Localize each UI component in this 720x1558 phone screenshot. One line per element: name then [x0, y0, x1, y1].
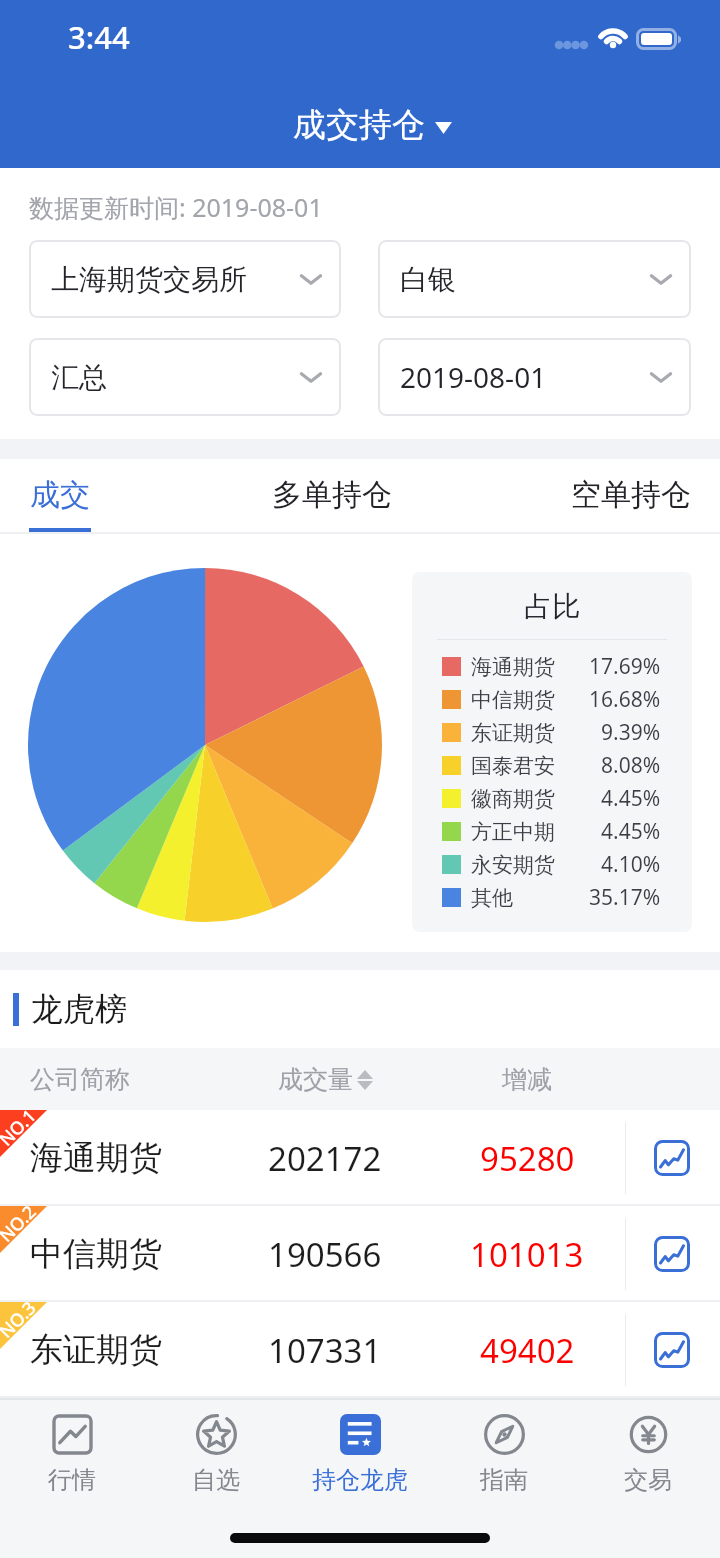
staticText: 自选 — [192, 1465, 240, 1495]
staticText: 空单持仓 — [571, 476, 691, 514]
staticText: 龙虎榜 — [31, 989, 127, 1029]
staticText: 方正中期 — [471, 819, 555, 845]
staticText: 交易 — [624, 1465, 672, 1495]
button[interactable]: 上海期货交易所 — [29, 240, 341, 318]
staticText: NO.3 — [0, 1295, 42, 1344]
staticText: 上海期货交易所 — [51, 262, 247, 297]
button[interactable]: 2019-08-01 — [378, 338, 691, 416]
staticText: 4.45% — [601, 817, 661, 846]
staticText: 其他 — [471, 885, 513, 911]
button[interactable]: 中信期货 — [0, 1206, 720, 1302]
staticText: 东证期货 — [471, 720, 555, 746]
staticText: 2019-08-01 — [400, 358, 547, 396]
staticText: 中信期货 — [471, 687, 555, 713]
button[interactable]: 海通期货 — [0, 1110, 720, 1206]
button[interactable]: 查看走势图 — [654, 1332, 690, 1368]
staticText: 101013 — [470, 1232, 584, 1277]
button[interactable]: 多单持仓 — [269, 459, 394, 534]
staticText: 16.68% — [589, 685, 661, 714]
staticText: 95280 — [480, 1136, 575, 1181]
button[interactable]: 持仓龙虎 — [288, 1400, 432, 1505]
staticText: 国泰君安 — [471, 753, 555, 779]
button[interactable]: 成交持仓 — [293, 104, 452, 146]
staticText: 190566 — [268, 1232, 382, 1277]
button[interactable]: 白银 — [378, 240, 691, 318]
staticText: NO.1 — [0, 1103, 42, 1152]
staticText: 3:44 — [68, 16, 130, 58]
staticText: 海通期货 — [471, 654, 555, 680]
staticText: 107331 — [268, 1328, 382, 1373]
staticText: 白银 — [400, 262, 456, 297]
staticText: 9.39% — [601, 718, 661, 747]
staticText: 成交量 — [278, 1064, 353, 1095]
button[interactable]: 交易 — [576, 1400, 720, 1505]
button[interactable]: 空单持仓 — [571, 459, 691, 534]
staticText: 17.69% — [589, 652, 661, 681]
staticText: 东证期货 — [30, 1329, 162, 1371]
staticText: 行情 — [48, 1465, 96, 1495]
button[interactable]: 自选 — [144, 1400, 288, 1505]
button[interactable]: 汇总 — [29, 338, 341, 416]
staticText: 永安期货 — [471, 852, 555, 878]
staticText: 成交 — [30, 476, 90, 514]
staticText: 占比 — [412, 589, 692, 624]
staticText: 持仓龙虎 — [312, 1465, 408, 1495]
staticText: 中信期货 — [30, 1233, 162, 1275]
staticText: 汇总 — [51, 360, 107, 395]
staticText: 49402 — [480, 1328, 575, 1373]
button[interactable]: 东证期货 — [0, 1302, 720, 1398]
staticText: 增减 — [502, 1064, 552, 1095]
button[interactable]: 行情 — [0, 1400, 144, 1505]
staticText: 4.45% — [601, 784, 661, 813]
staticText: 8.08% — [601, 751, 661, 780]
staticText: 徽商期货 — [471, 786, 555, 812]
staticText: 数据更新时间: 2019-08-01 — [29, 190, 323, 224]
button[interactable]: 查看走势图 — [654, 1140, 690, 1176]
staticText: 公司简称 — [30, 1064, 130, 1095]
staticText: 指南 — [480, 1465, 528, 1495]
button[interactable]: 查看走势图 — [654, 1236, 690, 1272]
staticText: NO.2 — [0, 1199, 42, 1248]
button[interactable]: 成交 — [29, 459, 91, 534]
staticText: 成交持仓 — [293, 104, 425, 146]
staticText: 多单持仓 — [272, 476, 392, 514]
staticText: 4.10% — [601, 850, 661, 879]
staticText: 35.17% — [589, 883, 661, 912]
staticText: 202172 — [268, 1136, 382, 1181]
button[interactable]: 指南 — [432, 1400, 576, 1505]
staticText: 海通期货 — [30, 1137, 162, 1179]
